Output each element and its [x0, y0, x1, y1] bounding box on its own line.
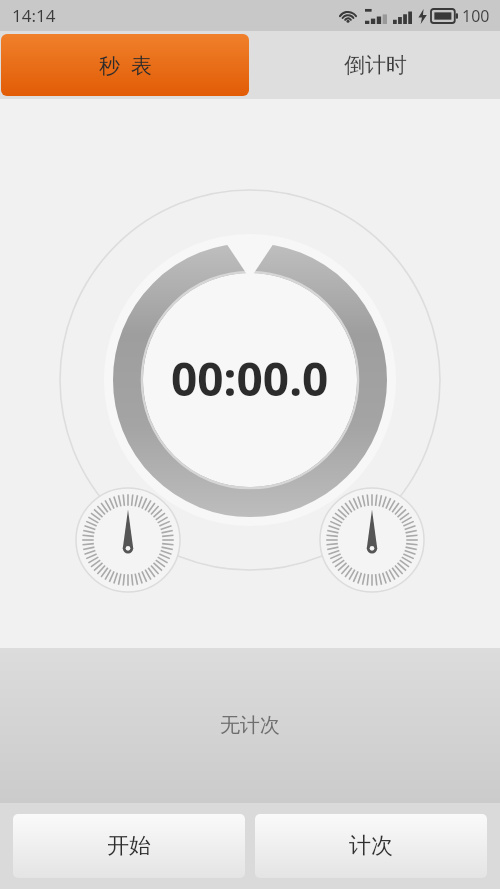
- staticText: 14:14: [12, 4, 56, 27]
- button[interactable]: 倒计时: [250, 31, 500, 99]
- staticText: 计次: [349, 832, 393, 860]
- staticText: 秒 表: [99, 51, 152, 80]
- staticText: 倒计时: [344, 52, 407, 78]
- staticText: 00:00.0: [171, 347, 329, 410]
- staticText: 开始: [107, 832, 151, 860]
- staticText: 无计次: [220, 713, 280, 738]
- button[interactable]: 计次: [255, 814, 487, 878]
- button[interactable]: 开始: [13, 814, 245, 878]
- button[interactable]: 秒 表: [1, 34, 249, 96]
- staticText: 100: [462, 5, 490, 27]
